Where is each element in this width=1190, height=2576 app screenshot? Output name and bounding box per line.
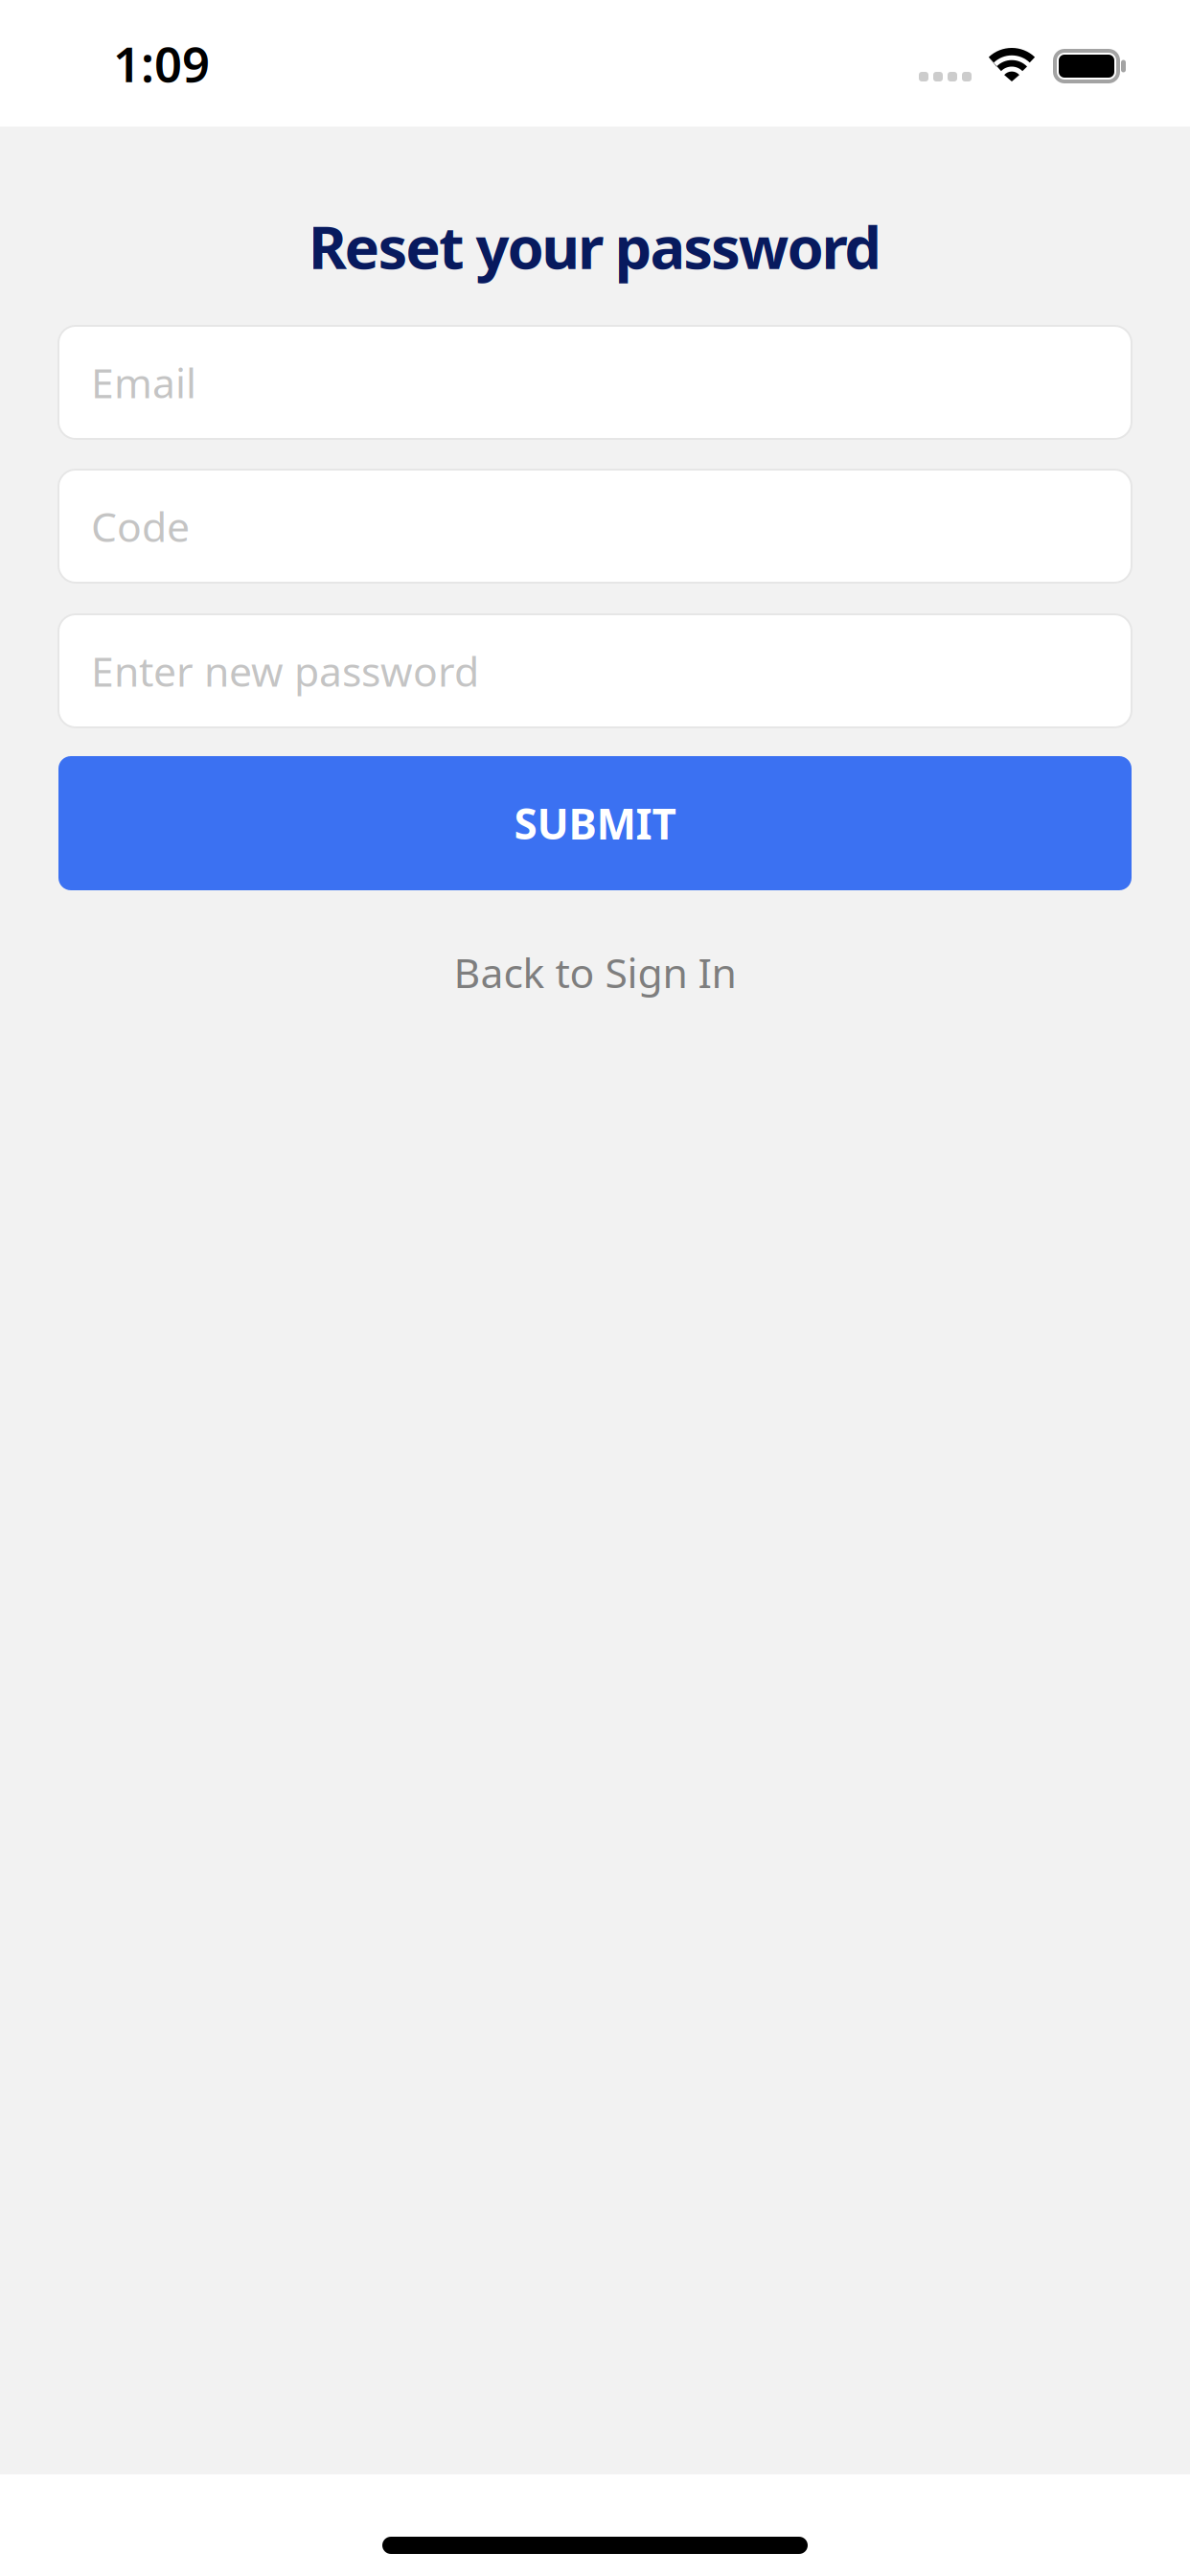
button[interactable]: Email	[58, 326, 1132, 439]
button[interactable]: Code	[58, 470, 1132, 583]
staticText: Code	[91, 499, 190, 553]
button[interactable]: Enter new password	[58, 614, 1132, 727]
staticText: Back to Sign In	[454, 945, 736, 999]
button[interactable]: SUBMIT	[58, 756, 1132, 890]
staticText: SUBMIT	[514, 795, 676, 851]
staticText: Reset your password	[308, 207, 882, 285]
staticText: 1:09	[113, 31, 210, 96]
staticText: Enter new password	[91, 644, 479, 698]
button[interactable]: Back to Sign In	[58, 890, 1132, 1028]
staticText: Email	[91, 355, 196, 410]
